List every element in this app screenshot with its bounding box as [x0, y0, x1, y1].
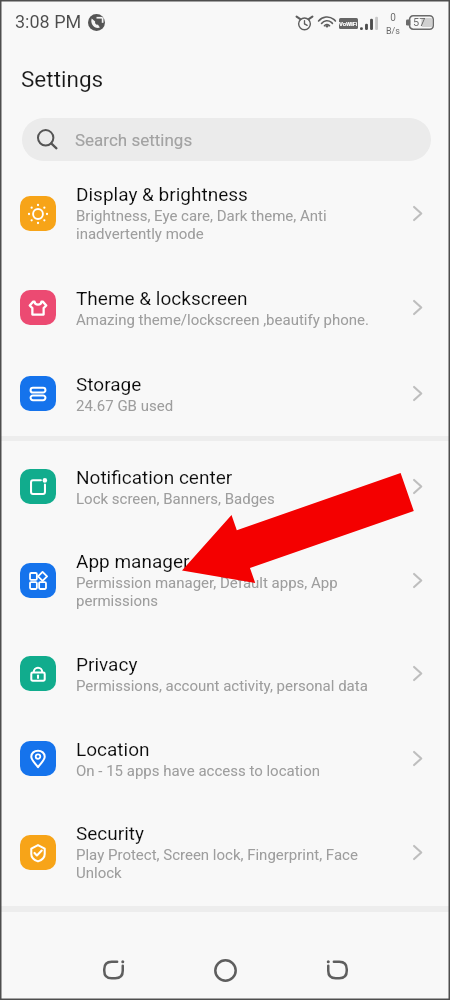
- staticText: App manager: [76, 550, 190, 572]
- button[interactable]: App manager: [0, 529, 450, 631]
- staticText: Unlock: [76, 864, 122, 882]
- staticText: Display & brightness: [76, 183, 248, 205]
- button[interactable]: Security: [0, 801, 450, 903]
- staticText: Lock screen, Banners, Badges: [76, 490, 275, 508]
- staticText: Privacy: [76, 653, 138, 675]
- button[interactable]: Location: [0, 716, 450, 801]
- staticText: Security: [76, 822, 145, 844]
- staticText: Play Protect, Screen lock, Fingerprint, …: [76, 846, 358, 864]
- staticText: 57: [413, 16, 426, 29]
- staticText: Storage: [76, 373, 142, 395]
- staticText: Settings: [21, 66, 104, 92]
- button[interactable]: Storage: [0, 351, 450, 436]
- staticText: permissions: [76, 592, 158, 610]
- staticText: Permission manager, Default apps, App: [76, 574, 338, 592]
- button[interactable]: Privacy: [0, 631, 450, 716]
- button[interactable]: Back: [312, 945, 362, 995]
- staticText: Search settings: [75, 130, 193, 150]
- staticText: Notification center: [76, 466, 233, 488]
- staticText: Brightness, Eye care, Dark theme, Anti: [76, 207, 327, 225]
- staticText: 0: [390, 12, 396, 24]
- staticText: Amazing theme/lockscreen ,beautify phone…: [76, 311, 369, 329]
- staticText: Theme & lockscreen: [76, 287, 248, 309]
- button[interactable]: Theme & lockscreen: [0, 264, 450, 351]
- button[interactable]: Recents: [88, 945, 138, 995]
- staticText: 24.67 GB used: [76, 397, 174, 415]
- staticText: B/s: [386, 26, 400, 37]
- button[interactable]: Search settings: [22, 118, 431, 161]
- staticText: Permissions, account activity, personal …: [76, 677, 368, 695]
- staticText: On - 15 apps have access to location: [76, 762, 321, 780]
- staticText: VoWiFi: [339, 20, 358, 27]
- button[interactable]: Display & brightness: [0, 162, 450, 264]
- staticText: inadvertently mode: [76, 225, 204, 243]
- staticText: Location: [76, 738, 150, 760]
- button[interactable]: Home: [200, 945, 250, 995]
- button[interactable]: Notification center: [0, 444, 450, 529]
- staticText: 3:08 PM: [15, 11, 82, 32]
